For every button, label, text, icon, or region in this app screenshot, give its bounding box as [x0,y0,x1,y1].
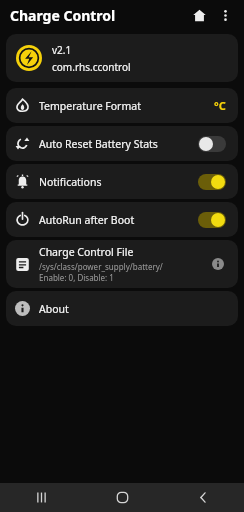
staticText: Notifications [39,175,198,189]
button[interactable]: Info [208,254,228,274]
staticText: /sys/class/power_supply/battery/batt_sla… [39,261,208,272]
button[interactable]: Toggle on [198,212,226,228]
staticText: Enable: 0, Disable: 1 [39,272,114,283]
staticText: Charge Control [10,6,116,25]
staticText: Charge Control File [39,245,134,259]
staticText: About [39,302,226,316]
button[interactable]: More options [212,2,238,28]
button[interactable]: v2.1 [6,34,238,82]
button[interactable]: Notifications [6,164,238,199]
button[interactable]: Charge Control File [6,240,238,288]
button[interactable]: Temperature Format [6,88,238,123]
staticText: Auto Reset Battery Stats [39,137,198,151]
button[interactable]: About [6,291,238,326]
button[interactable]: Auto Reset Battery Stats [6,126,238,161]
staticText: °C [214,98,226,113]
staticText: com.rhs.ccontrol [52,60,131,74]
button[interactable]: Home [186,2,212,28]
button[interactable]: Back [163,483,244,512]
button[interactable]: Home [82,483,163,512]
staticText: Temperature Format [39,99,214,113]
staticText: AutoRun after Boot [39,213,198,227]
button[interactable]: Toggle on [198,174,226,190]
button[interactable]: Recent apps [0,483,82,512]
button[interactable]: AutoRun after Boot [6,202,238,237]
button[interactable]: Toggle off [198,136,226,152]
staticText: v2.1 [52,43,72,57]
